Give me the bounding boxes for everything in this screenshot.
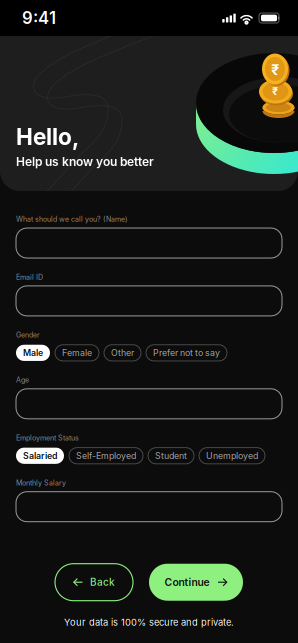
button[interactable]: Salaried bbox=[16, 448, 64, 464]
button[interactable]: Continue bbox=[149, 564, 243, 601]
staticText: Gender bbox=[16, 331, 40, 339]
staticText: Female bbox=[62, 347, 92, 358]
staticText: Prefer not to say bbox=[153, 347, 220, 358]
staticText: Continue bbox=[164, 576, 209, 588]
staticText: Self-Employed bbox=[76, 450, 136, 461]
staticText: Monthly Salary bbox=[16, 479, 66, 487]
staticText: ₹ bbox=[271, 61, 279, 79]
button[interactable]: Back bbox=[55, 564, 133, 601]
staticText: Employment Status bbox=[16, 434, 79, 442]
staticText: Salaried bbox=[23, 450, 57, 461]
staticText: Help us know you better bbox=[16, 154, 154, 169]
button[interactable]: What should we call you? (Name) bbox=[16, 228, 282, 258]
button[interactable]: Monthly Salary bbox=[16, 492, 282, 522]
button[interactable]: Self-Employed bbox=[69, 448, 143, 464]
button[interactable]: Prefer not to say bbox=[146, 345, 227, 361]
staticText: What should we call you? (Name) bbox=[16, 215, 128, 223]
button[interactable]: Unemployed bbox=[199, 448, 265, 464]
staticText: Other bbox=[111, 347, 134, 358]
button[interactable]: Female bbox=[55, 345, 99, 361]
staticText: 9:41 bbox=[22, 8, 56, 28]
button[interactable]: Male bbox=[16, 345, 50, 361]
button[interactable]: Other bbox=[104, 345, 141, 361]
staticText: Student bbox=[155, 450, 187, 461]
button[interactable]: Email ID bbox=[16, 286, 282, 316]
staticText: Email ID bbox=[16, 273, 43, 281]
staticText: Male bbox=[23, 347, 43, 358]
button[interactable]: Student bbox=[148, 448, 194, 464]
staticText: Your data is 100% secure and private. bbox=[64, 617, 234, 628]
staticText: ₹ bbox=[272, 85, 278, 98]
staticText: Back bbox=[90, 576, 115, 588]
button[interactable]: Age bbox=[16, 389, 282, 419]
staticText: Hello, bbox=[16, 123, 79, 150]
staticText: Unemployed bbox=[206, 450, 258, 461]
staticText: Age bbox=[16, 376, 29, 384]
